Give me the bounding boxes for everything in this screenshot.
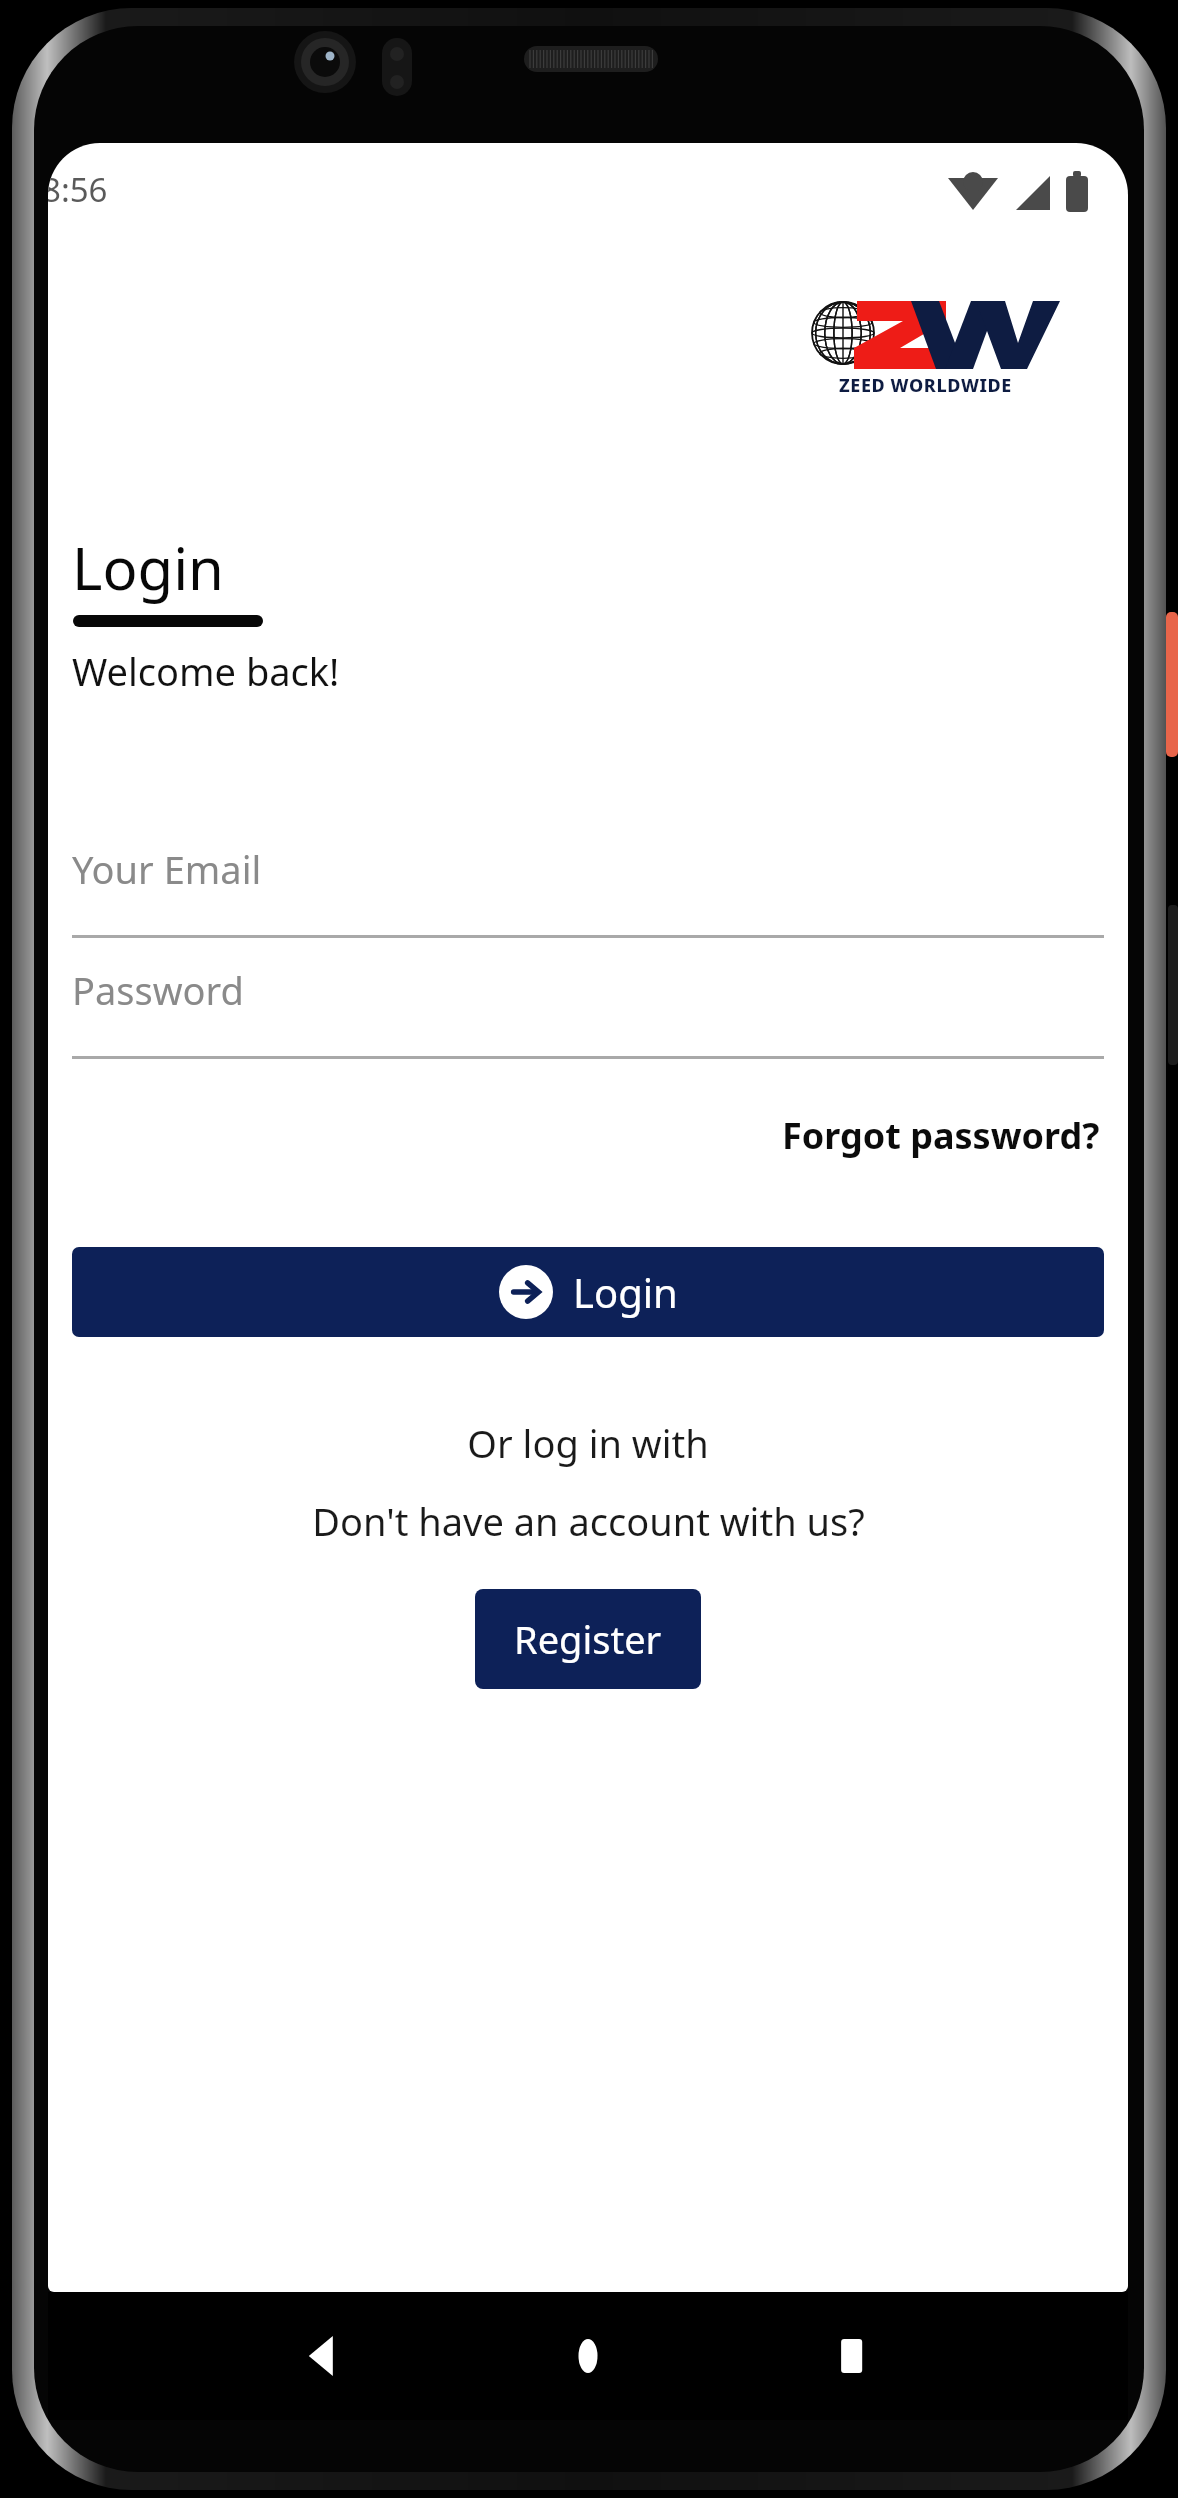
- staticText: 8:56: [48, 167, 108, 212]
- button[interactable]: Your Email: [72, 843, 1104, 938]
- button[interactable]: Password: [72, 964, 1104, 1059]
- staticText: Or log in with: [467, 1417, 709, 1469]
- button[interactable]: Recent apps: [804, 2308, 900, 2404]
- button[interactable]: Forgot password?: [778, 1105, 1104, 1166]
- staticText: Your Email: [72, 843, 262, 895]
- button[interactable]: Home: [540, 2308, 636, 2404]
- staticText: Don't have an account with us?: [312, 1495, 865, 1547]
- button[interactable]: Back: [276, 2308, 372, 2404]
- button[interactable]: Or log in with: [459, 1413, 717, 1473]
- button[interactable]: Register: [475, 1589, 701, 1689]
- staticText: Login: [72, 528, 224, 607]
- button[interactable]: Login: [72, 1247, 1104, 1337]
- staticText: Welcome back!: [72, 645, 340, 697]
- staticText: Forgot password?: [782, 1111, 1100, 1160]
- staticText: Login: [573, 1265, 678, 1319]
- staticText: ZEED WORLDWIDE: [839, 373, 1012, 398]
- staticText: Register: [514, 1613, 662, 1665]
- staticText: Password: [72, 964, 244, 1016]
